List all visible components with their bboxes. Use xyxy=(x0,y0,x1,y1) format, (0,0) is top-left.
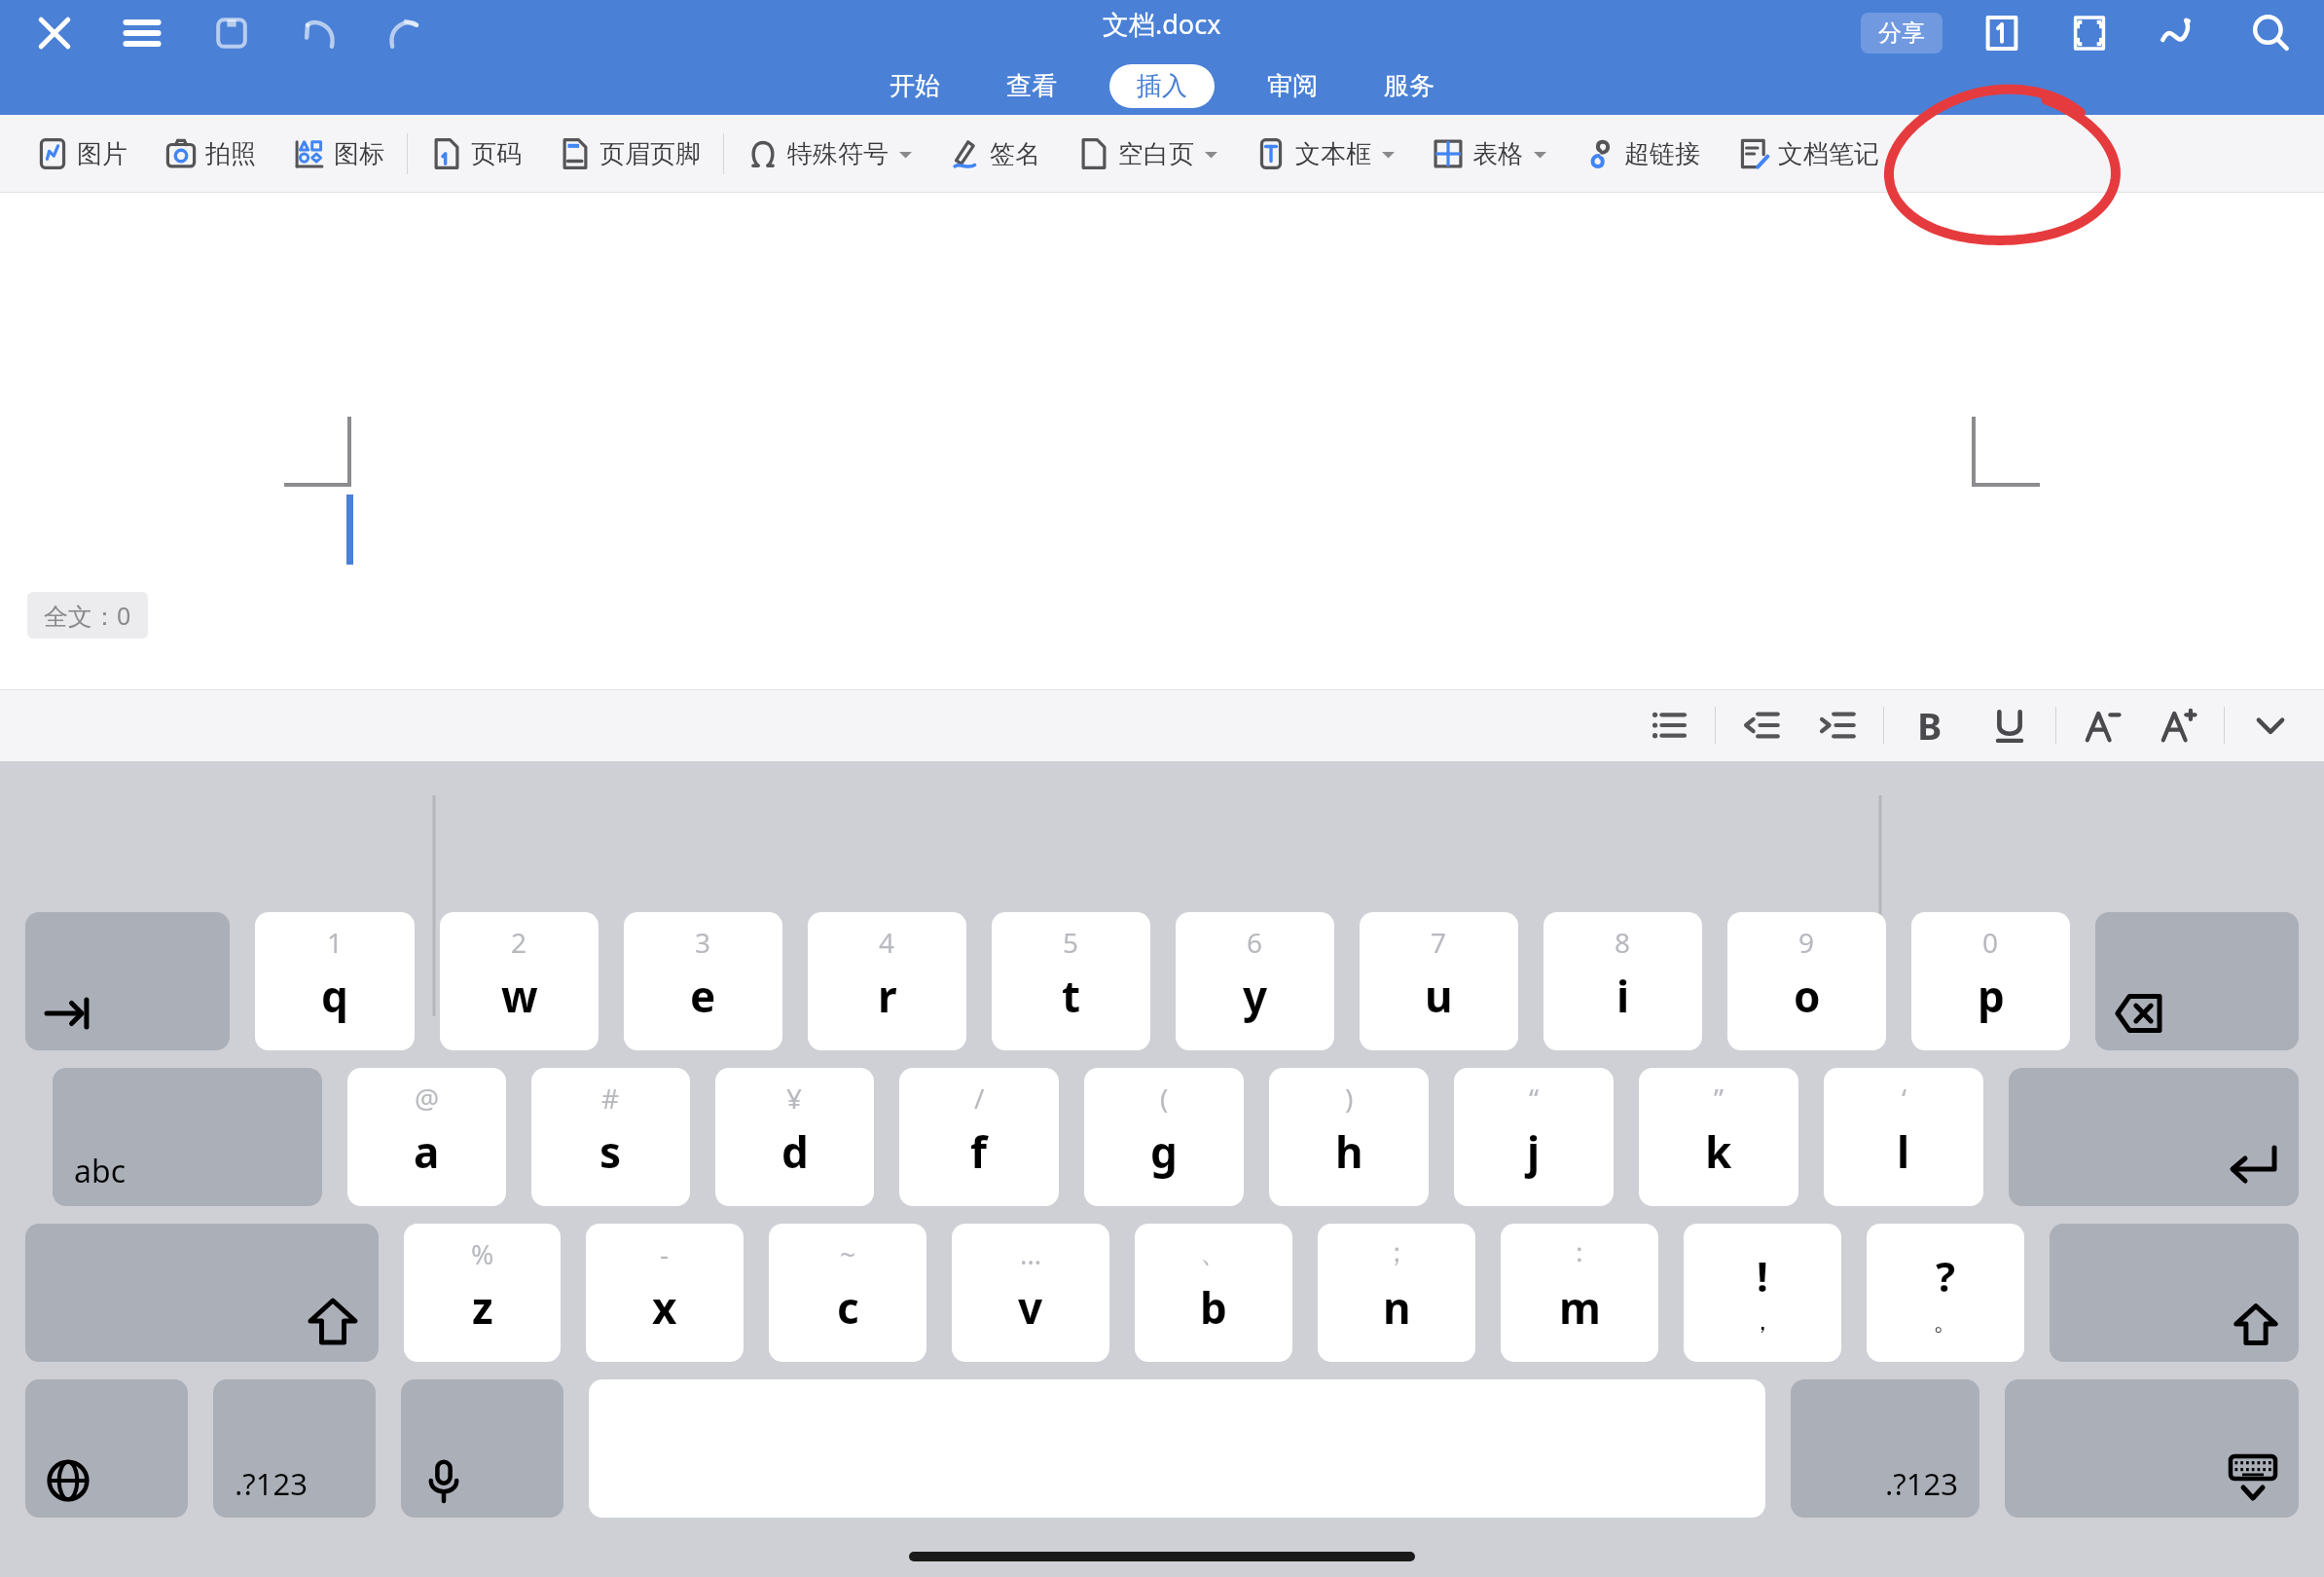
button[interactable]: 0 xyxy=(1911,912,2070,1050)
button[interactable]: 审阅 xyxy=(1255,64,1329,108)
button[interactable]: @ xyxy=(347,1068,506,1206)
button[interactable]: “ xyxy=(1454,1068,1614,1206)
button[interactable]: 开始 xyxy=(878,64,952,108)
staticText: 1 xyxy=(327,924,344,961)
button[interactable]: Backspace xyxy=(2095,912,2299,1050)
button[interactable]: ! xyxy=(1684,1224,1841,1362)
button[interactable]: 分享 xyxy=(1861,13,1943,54)
button[interactable]: 图片 xyxy=(27,129,136,178)
staticText: f xyxy=(970,1122,988,1181)
button[interactable]: Decrease font size xyxy=(2074,697,2130,753)
button[interactable]: ? xyxy=(1867,1224,2024,1362)
button[interactable]: Tab xyxy=(25,912,230,1050)
staticText: 分享 xyxy=(1878,18,1925,48)
button[interactable]: 3 xyxy=(624,912,782,1050)
button[interactable]: 2 xyxy=(440,912,599,1050)
button[interactable]: ： xyxy=(1501,1224,1658,1362)
button[interactable]: Ink xyxy=(2151,5,2207,61)
button[interactable]: 插入 xyxy=(1109,64,1215,108)
button[interactable]: 签名 xyxy=(940,129,1049,178)
staticText: 、 xyxy=(1200,1235,1227,1269)
staticText: o xyxy=(1794,967,1821,1025)
button[interactable]: ~ xyxy=(769,1224,926,1362)
button[interactable]: - xyxy=(586,1224,744,1362)
button[interactable]: Decrease indent xyxy=(1733,697,1790,753)
staticText: k xyxy=(1705,1122,1732,1181)
button[interactable]: Switch language xyxy=(25,1379,188,1518)
staticText: “ xyxy=(1529,1080,1540,1117)
staticText: 0 xyxy=(1982,924,1999,961)
button[interactable]: .?123 xyxy=(213,1379,376,1518)
button[interactable]: 9 xyxy=(1727,912,1886,1050)
button[interactable]: 4 xyxy=(808,912,966,1050)
staticText: ( xyxy=(1160,1080,1169,1117)
button[interactable]: 5 xyxy=(992,912,1150,1050)
button[interactable]: 文本框 xyxy=(1246,129,1403,178)
button[interactable]: Voice input xyxy=(401,1379,563,1518)
button[interactable]: Underline xyxy=(1981,697,2038,753)
button[interactable]: B xyxy=(1902,697,1958,753)
button[interactable]: Menu xyxy=(113,4,171,62)
button[interactable]: Increase font size xyxy=(2150,697,2206,753)
staticText: d xyxy=(781,1122,809,1181)
button[interactable]: ) xyxy=(1269,1068,1429,1206)
button[interactable]: 表格 xyxy=(1423,129,1555,178)
button[interactable]: Redo xyxy=(376,4,434,62)
staticText: 审阅 xyxy=(1267,70,1318,102)
button[interactable]: Shift xyxy=(25,1224,379,1362)
button[interactable]: / xyxy=(899,1068,1059,1206)
staticText: 特殊符号 xyxy=(787,138,889,170)
staticText: 签名 xyxy=(990,138,1040,170)
button[interactable]: 图标 xyxy=(284,129,393,178)
staticText: ) xyxy=(1345,1080,1354,1117)
button[interactable]: Search xyxy=(2242,5,2299,61)
staticText: x xyxy=(652,1278,677,1337)
button[interactable]: ‘ xyxy=(1824,1068,1983,1206)
button[interactable]: Bulleted list xyxy=(1641,697,1697,753)
button[interactable]: 页眉页脚 xyxy=(550,129,709,178)
button[interactable] xyxy=(589,1379,1765,1518)
staticText: y xyxy=(1243,967,1268,1025)
button[interactable]: 1 xyxy=(255,912,415,1050)
button[interactable]: 超链接 xyxy=(1575,129,1709,178)
staticText: ! xyxy=(1757,1248,1768,1303)
button[interactable]: Increase indent xyxy=(1809,697,1866,753)
button[interactable]: 8 xyxy=(1543,912,1702,1050)
button[interactable]: ； xyxy=(1318,1224,1475,1362)
button[interactable]: 全文：0 xyxy=(27,592,148,639)
button[interactable]: 、 xyxy=(1135,1224,1292,1362)
button[interactable]: 服务 xyxy=(1372,64,1446,108)
button[interactable]: 文档笔记 xyxy=(1728,129,1888,178)
button[interactable]: 6 xyxy=(1176,912,1334,1050)
staticText: 全文：0 xyxy=(44,599,131,632)
button[interactable]: Hide keyboard xyxy=(2005,1379,2299,1518)
button[interactable]: Return xyxy=(2009,1068,2299,1206)
staticText: .?123 xyxy=(1885,1463,1958,1504)
button[interactable]: … xyxy=(952,1224,1109,1362)
button[interactable]: 7 xyxy=(1360,912,1518,1050)
button[interactable]: 拍照 xyxy=(156,129,265,178)
button[interactable]: 查看 xyxy=(995,64,1069,108)
button[interactable]: Collapse toolbar xyxy=(2242,697,2299,753)
staticText: i xyxy=(1616,967,1630,1025)
button[interactable]: Full screen xyxy=(2063,7,2116,59)
button[interactable]: Save xyxy=(202,4,261,62)
staticText: 页眉页脚 xyxy=(599,138,701,170)
button[interactable]: 特殊符号 xyxy=(738,129,921,178)
button[interactable]: abc xyxy=(53,1068,322,1206)
staticText: 5 xyxy=(1063,924,1079,961)
button[interactable]: ” xyxy=(1639,1068,1798,1206)
button[interactable]: Shift xyxy=(2050,1224,2299,1362)
button[interactable]: 页码 xyxy=(421,129,530,178)
button[interactable]: 空白页 xyxy=(1069,129,1226,178)
button[interactable]: Close xyxy=(25,4,84,62)
button[interactable]: .?123 xyxy=(1791,1379,1979,1518)
button[interactable]: ¥ xyxy=(715,1068,874,1206)
button[interactable]: Page 1 xyxy=(1976,7,2028,59)
button[interactable]: % xyxy=(404,1224,561,1362)
staticText: ； xyxy=(1383,1235,1410,1269)
button[interactable]: ( xyxy=(1084,1068,1244,1206)
button[interactable]: Undo xyxy=(290,4,348,62)
staticText: n xyxy=(1383,1278,1411,1337)
button[interactable]: # xyxy=(531,1068,690,1206)
